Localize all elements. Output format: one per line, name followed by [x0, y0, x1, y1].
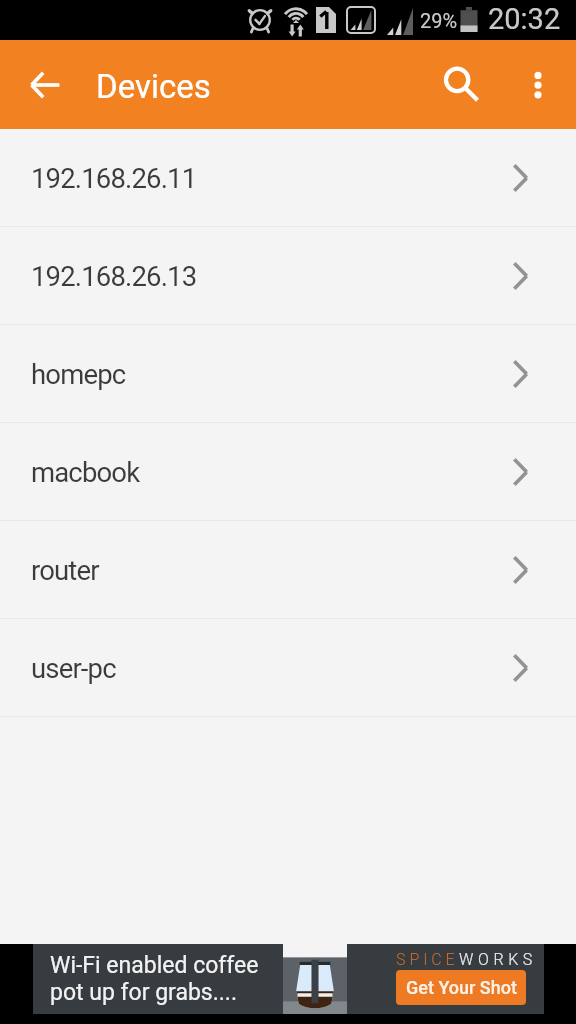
button[interactable]: 192.168.26.11: [0, 129, 576, 227]
button[interactable]: homepc: [0, 325, 576, 423]
button[interactable]: macbook: [0, 423, 576, 521]
staticText: Get Your Shot: [406, 977, 517, 998]
staticText: WORKS: [459, 950, 537, 969]
staticText: user-pc: [31, 652, 116, 684]
staticText: 20:32: [488, 2, 561, 36]
button[interactable]: Get Your Shot: [396, 970, 526, 1005]
button[interactable]: user-pc: [0, 619, 576, 717]
staticText: homepc: [31, 358, 126, 390]
staticText: SPICE: [396, 950, 459, 969]
staticText: 192.168.26.11: [31, 162, 197, 194]
staticText: pot up for grabs....: [50, 979, 237, 1006]
staticText: Wi-Fi enabled coffee: [50, 952, 259, 979]
staticText: 29%: [420, 9, 458, 32]
button[interactable]: Advertisement: [33, 944, 544, 1014]
staticText: macbook: [31, 456, 140, 488]
button[interactable]: 192.168.26.13: [0, 227, 576, 325]
button[interactable]: router: [0, 521, 576, 619]
staticText: router: [31, 554, 99, 586]
button[interactable]: More options: [498, 40, 576, 129]
staticText: Devices: [96, 67, 211, 106]
button[interactable]: Search: [424, 40, 498, 129]
button[interactable]: Back: [0, 40, 84, 129]
staticText: 192.168.26.13: [31, 260, 197, 292]
